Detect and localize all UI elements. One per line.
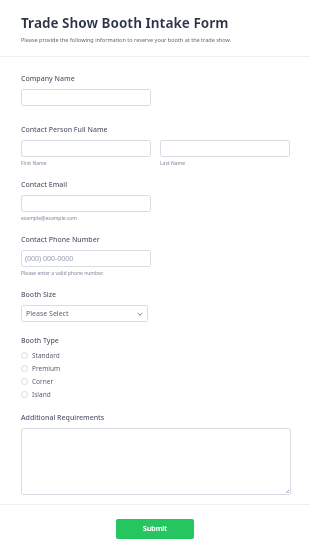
- button[interactable]: (000) 000-0000: [21, 250, 151, 267]
- staticText: Trade Show Booth Intake Form: [21, 14, 229, 32]
- button[interactable]: Premium: [21, 362, 291, 375]
- staticText: Premium: [32, 364, 61, 373]
- staticText: Additional Requirements: [21, 413, 105, 423]
- staticText: Booth Type: [21, 336, 59, 346]
- button[interactable]: [21, 195, 151, 212]
- staticText: Island: [32, 390, 51, 399]
- button[interactable]: Corner: [21, 375, 291, 388]
- button[interactable]: Additional requirements text area: [21, 428, 291, 495]
- staticText: example@example.com: [21, 215, 77, 222]
- staticText: Contact Phone Number: [21, 235, 100, 245]
- button[interactable]: [21, 89, 151, 106]
- button[interactable]: Submit: [116, 519, 194, 539]
- staticText: Submit: [143, 524, 167, 534]
- staticText: Contact Person Full Name: [21, 125, 108, 135]
- button[interactable]: [160, 140, 290, 157]
- staticText: Company Name: [21, 74, 75, 84]
- staticText: Please Select: [26, 309, 69, 319]
- button[interactable]: [21, 140, 151, 157]
- button[interactable]: Booth size selector: [21, 305, 148, 322]
- staticText: Contact Email: [21, 180, 68, 190]
- button[interactable]: Standard: [21, 349, 291, 362]
- button[interactable]: Island: [21, 388, 291, 401]
- staticText: Corner: [32, 377, 54, 386]
- staticText: First Name: [21, 160, 47, 167]
- staticText: Booth Size: [21, 290, 57, 300]
- staticText: Please provide the following information…: [21, 36, 232, 43]
- staticText: Standard: [32, 351, 60, 360]
- staticText: Please enter a valid phone number.: [21, 270, 104, 277]
- staticText: Last Name: [160, 160, 186, 167]
- staticText: (000) 000-0000: [25, 254, 74, 264]
